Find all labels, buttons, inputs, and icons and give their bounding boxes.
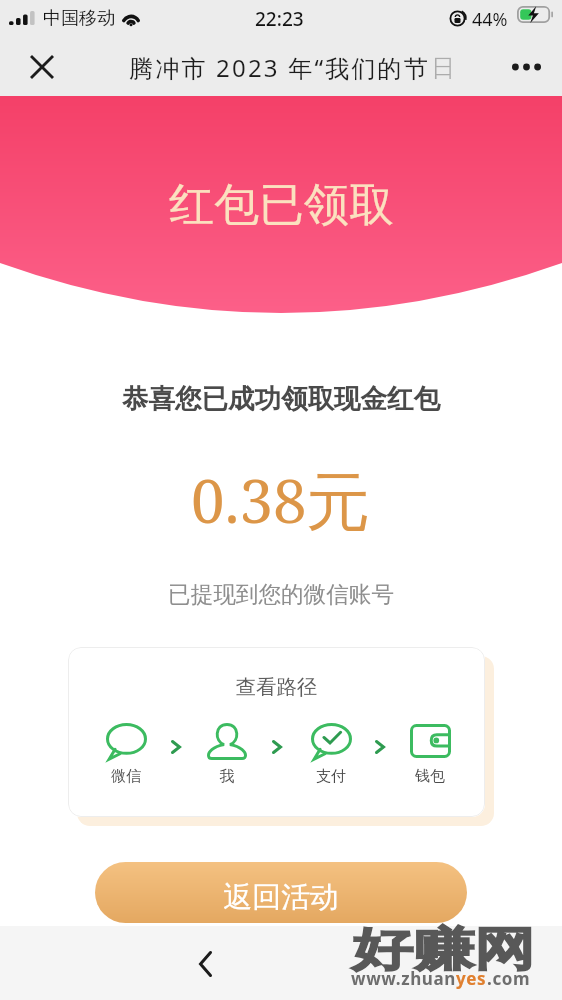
staticText: 22:23 <box>255 6 304 32</box>
staticText: 元 <box>306 462 370 543</box>
staticText: 红包已领取 <box>169 177 394 234</box>
staticText: 0.38 <box>191 459 307 541</box>
staticText: 钱包 <box>402 767 458 786</box>
button[interactable]: 返回活动 <box>95 862 467 923</box>
button[interactable]: Close <box>20 45 64 89</box>
staticText: 查看路径 <box>68 674 485 700</box>
staticText: 已提现到您的微信账号 <box>0 580 562 608</box>
staticText: yes <box>456 967 487 990</box>
staticText: 44% <box>472 7 508 32</box>
button[interactable]: More options <box>504 45 548 89</box>
staticText: 腾冲市 2023 年“我们的节 <box>129 51 431 84</box>
staticText: .com <box>487 967 531 990</box>
staticText: 中国移动 <box>43 7 115 30</box>
staticText: 支付 <box>303 767 359 786</box>
staticText: 好赚网 <box>352 921 535 979</box>
staticText: 我 <box>199 767 255 786</box>
staticText: 返回活动 <box>223 879 339 916</box>
staticText: 微信 <box>98 767 154 786</box>
staticText: www.zhuan <box>351 967 456 990</box>
button[interactable]: Back <box>183 942 227 986</box>
staticText: 日 <box>431 53 458 83</box>
staticText: 恭喜您已成功领取现金红包 <box>0 382 562 415</box>
button[interactable]: 查看路径 <box>68 647 485 817</box>
